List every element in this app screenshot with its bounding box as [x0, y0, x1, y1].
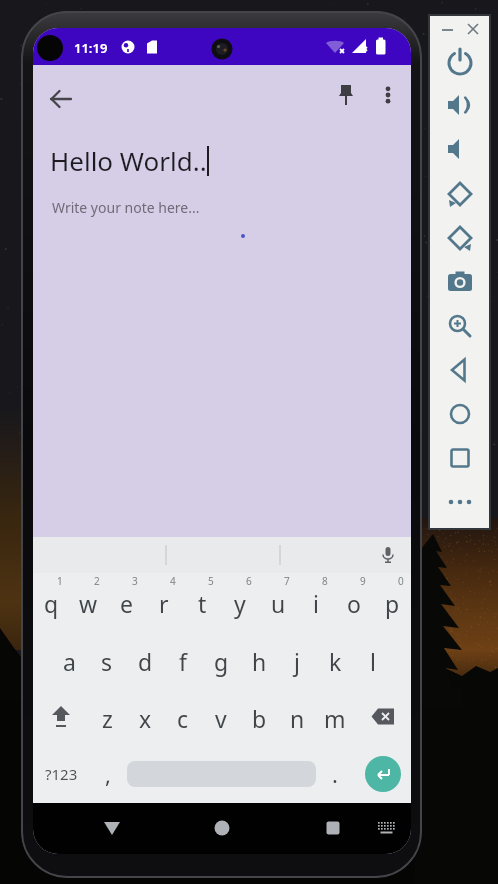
button[interactable]: s: [88, 630, 126, 688]
staticText: v: [215, 703, 227, 734]
button[interactable]: a: [51, 630, 88, 688]
button[interactable]: k: [316, 630, 354, 688]
staticText: 5: [208, 574, 214, 588]
button[interactable]: .: [316, 745, 354, 803]
button[interactable]: r: [145, 573, 183, 630]
button[interactable]: e: [107, 573, 145, 630]
button[interactable]: o: [335, 573, 373, 630]
button[interactable]: [375, 542, 401, 568]
staticText: j: [294, 646, 300, 677]
staticText: e: [120, 588, 133, 619]
staticText: 3: [132, 574, 138, 588]
staticText: q: [44, 588, 59, 619]
button[interactable]: p: [373, 573, 411, 630]
button[interactable]: [354, 688, 411, 745]
staticText: u: [271, 588, 286, 619]
button[interactable]: [441, 43, 478, 80]
staticText: h: [252, 646, 267, 677]
staticText: 2: [94, 574, 100, 588]
staticText: i: [313, 588, 319, 619]
staticText: 9: [360, 574, 366, 588]
button[interactable]: [441, 351, 478, 388]
button[interactable]: [441, 263, 478, 300]
button[interactable]: [41, 79, 81, 119]
staticText: t: [198, 588, 207, 619]
button[interactable]: [462, 18, 484, 40]
button[interactable]: ?123: [33, 745, 89, 803]
button[interactable]: l: [354, 630, 392, 688]
staticText: s: [101, 646, 113, 677]
button[interactable]: u: [259, 573, 297, 630]
staticText: 6: [246, 574, 252, 588]
button[interactable]: ,: [89, 745, 127, 803]
button[interactable]: i: [297, 573, 335, 630]
button[interactable]: [313, 808, 353, 848]
staticText: c: [177, 703, 189, 734]
staticText: ,: [105, 759, 111, 789]
staticText: 8: [322, 574, 328, 588]
staticText: Write your note here...: [52, 198, 200, 217]
button[interactable]: [202, 808, 242, 848]
button[interactable]: [441, 86, 478, 123]
staticText: 11:19: [74, 39, 108, 57]
button[interactable]: [441, 439, 478, 476]
staticText: g: [214, 646, 229, 677]
button[interactable]: m: [316, 688, 354, 745]
staticText: w: [79, 588, 98, 619]
button[interactable]: f: [164, 630, 202, 688]
button[interactable]: b: [240, 688, 278, 745]
button[interactable]: [441, 219, 478, 256]
staticText: .: [332, 759, 338, 789]
button[interactable]: d: [126, 630, 164, 688]
staticText: k: [329, 646, 342, 677]
staticText: Hello World..: [50, 143, 207, 178]
staticText: m: [324, 703, 346, 734]
staticText: 7: [284, 574, 290, 588]
staticText: n: [290, 703, 305, 734]
button[interactable]: [441, 395, 478, 432]
button[interactable]: j: [278, 630, 316, 688]
button[interactable]: [92, 808, 132, 848]
staticText: f: [179, 646, 187, 677]
button[interactable]: [441, 175, 478, 212]
button[interactable]: [441, 130, 478, 167]
staticText: p: [385, 588, 400, 619]
button[interactable]: h: [240, 630, 278, 688]
button[interactable]: c: [164, 688, 202, 745]
button[interactable]: w: [70, 573, 107, 630]
button[interactable]: n: [278, 688, 316, 745]
button[interactable]: v: [202, 688, 240, 745]
staticText: 1: [57, 574, 63, 588]
button[interactable]: [33, 688, 89, 745]
staticText: d: [138, 646, 153, 677]
staticText: r: [159, 588, 169, 619]
button[interactable]: g: [202, 630, 240, 688]
button[interactable]: x: [126, 688, 164, 745]
button[interactable]: t: [183, 573, 221, 630]
button[interactable]: [436, 18, 458, 40]
staticText: x: [139, 703, 152, 734]
button[interactable]: [354, 745, 411, 803]
staticText: y: [234, 588, 246, 619]
staticText: o: [347, 588, 361, 619]
staticText: 4: [170, 574, 176, 588]
staticText: 0: [398, 574, 404, 588]
button[interactable]: q: [33, 573, 70, 630]
button[interactable]: z: [89, 688, 126, 745]
button[interactable]: [326, 75, 366, 115]
button[interactable]: [441, 307, 478, 344]
staticText: ?123: [45, 764, 78, 784]
button[interactable]: [369, 811, 403, 845]
button[interactable]: [441, 483, 478, 520]
staticText: b: [252, 703, 267, 734]
staticText: l: [370, 646, 376, 677]
button[interactable]: y: [221, 573, 259, 630]
button[interactable]: [368, 75, 408, 115]
staticText: z: [102, 703, 113, 734]
staticText: a: [63, 646, 76, 677]
